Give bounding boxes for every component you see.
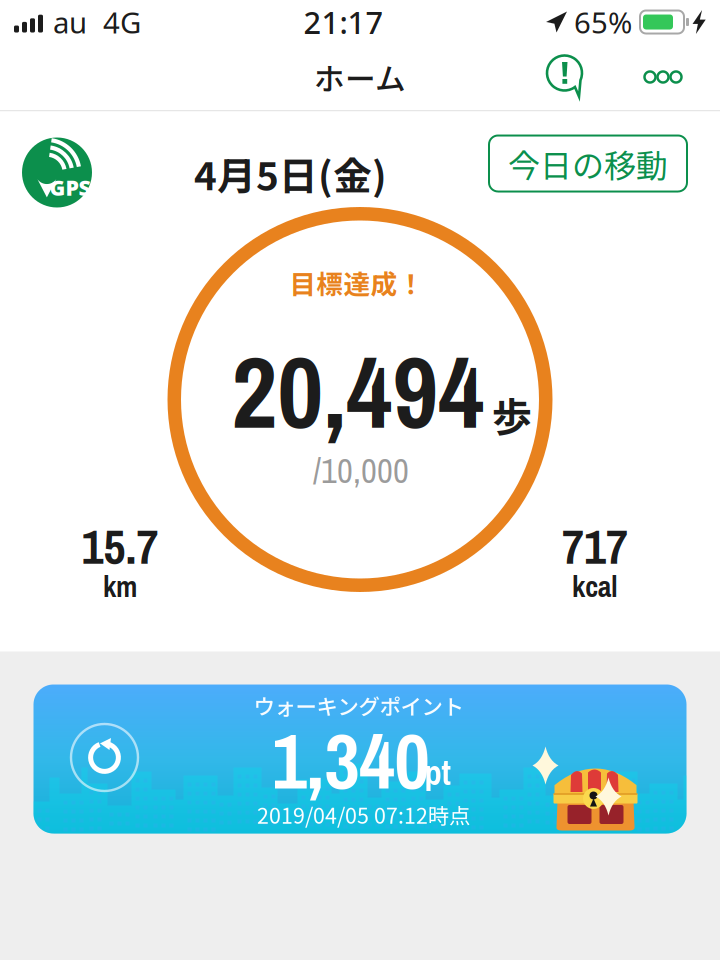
- button[interactable]: 今日の移動: [489, 135, 687, 191]
- staticText: 15.7: [81, 514, 158, 579]
- staticText: 20,494: [231, 324, 484, 459]
- button[interactable]: GPS: [22, 137, 92, 207]
- staticText: 717: [562, 514, 628, 579]
- staticText: 2019/04/05 07:12時点: [257, 799, 470, 830]
- staticText: 4G: [103, 2, 141, 41]
- button[interactable]: お知らせ: [545, 55, 585, 99]
- staticText: 目標達成！: [289, 263, 424, 302]
- button[interactable]: ウォーキングポイント: [33, 684, 686, 833]
- staticText: 歩: [492, 385, 532, 443]
- staticText: 1,340: [271, 708, 429, 813]
- staticText: kcal: [572, 567, 618, 606]
- staticText: au: [53, 2, 87, 41]
- staticText: GPS: [49, 173, 90, 202]
- staticText: 21:17: [303, 2, 383, 42]
- staticText: /10,000: [313, 447, 409, 494]
- button[interactable]: メニュー: [641, 55, 685, 99]
- staticText: km: [103, 567, 137, 606]
- staticText: 65%: [574, 2, 632, 41]
- staticText: 4月5日(金): [194, 145, 387, 201]
- staticText: 今日の移動: [508, 140, 668, 187]
- staticText: ホーム: [314, 55, 406, 99]
- staticText: ウォーキングポイント: [253, 690, 463, 721]
- staticText: pt: [424, 749, 450, 796]
